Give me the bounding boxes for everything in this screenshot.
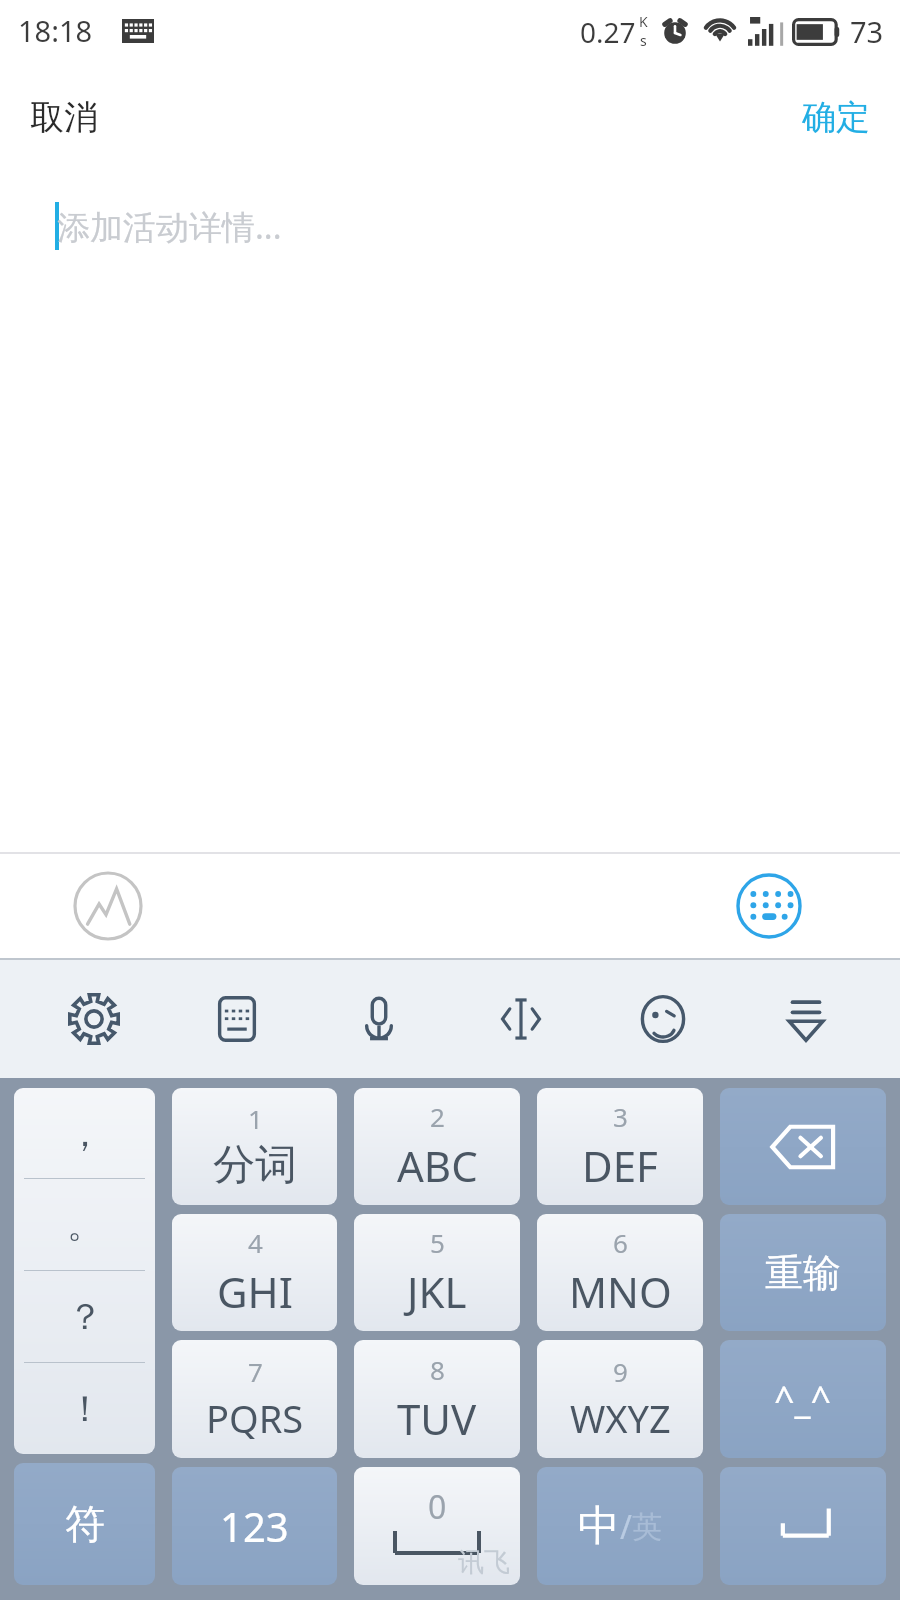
button[interactable]: Keyboard layout bbox=[189, 964, 285, 1074]
staticText: 7 bbox=[248, 1354, 263, 1389]
staticText: 0.27 bbox=[580, 13, 636, 51]
button[interactable]: ^_^ bbox=[720, 1340, 886, 1458]
button[interactable]: 重输 bbox=[720, 1214, 886, 1331]
button[interactable]: 0 bbox=[354, 1467, 520, 1585]
staticText: 3 bbox=[613, 1099, 628, 1134]
button[interactable]: 7 bbox=[172, 1340, 337, 1458]
staticText: 确定 bbox=[802, 96, 870, 139]
staticText: 符 bbox=[65, 1499, 105, 1549]
staticText: 英 bbox=[632, 1508, 662, 1546]
staticText: WXYZ bbox=[570, 1392, 671, 1444]
staticText: 重输 bbox=[765, 1249, 841, 1297]
button[interactable]: 中 bbox=[537, 1467, 703, 1585]
staticText: 。 bbox=[67, 1202, 103, 1247]
button[interactable]: Voice input bbox=[331, 964, 427, 1074]
staticText: 0 bbox=[428, 1485, 447, 1529]
staticText: PQRS bbox=[206, 1392, 304, 1444]
staticText: JKL bbox=[407, 1263, 467, 1320]
staticText: ABC bbox=[397, 1137, 478, 1194]
staticText: 18:18 bbox=[18, 11, 93, 50]
staticText: 取消 bbox=[30, 96, 98, 139]
staticText: 73 bbox=[850, 12, 884, 51]
staticText: ！ bbox=[67, 1386, 103, 1431]
button[interactable]: Enter bbox=[720, 1467, 886, 1585]
button[interactable]: 添加活动详情... bbox=[0, 172, 900, 852]
staticText: ， bbox=[67, 1111, 103, 1156]
button[interactable]: Hide keyboard bbox=[758, 964, 854, 1074]
button[interactable]: 123 bbox=[172, 1467, 337, 1585]
staticText: DEF bbox=[582, 1137, 658, 1194]
button[interactable]: 取消 bbox=[0, 78, 128, 157]
staticText: 123 bbox=[220, 1499, 289, 1553]
staticText: GHI bbox=[217, 1263, 293, 1320]
button[interactable]: 4 bbox=[172, 1214, 337, 1331]
button[interactable]: Emoji bbox=[615, 964, 711, 1074]
staticText: 中 bbox=[578, 1500, 620, 1553]
button[interactable]: 确定 bbox=[772, 78, 900, 157]
button[interactable]: ， bbox=[14, 1088, 155, 1454]
button[interactable]: 2 bbox=[354, 1088, 520, 1205]
button[interactable]: Add image bbox=[72, 870, 144, 942]
staticText: TUV bbox=[397, 1390, 477, 1447]
staticText: MNO bbox=[569, 1263, 672, 1320]
staticText: 5 bbox=[430, 1225, 445, 1260]
button[interactable]: Backspace bbox=[720, 1088, 886, 1205]
button[interactable]: Move cursor bbox=[473, 964, 569, 1074]
staticText: 1 bbox=[248, 1101, 263, 1136]
staticText: ^_^ bbox=[774, 1375, 832, 1424]
button[interactable]: 5 bbox=[354, 1214, 520, 1331]
staticText: 分词 bbox=[213, 1139, 297, 1192]
staticText: 4 bbox=[248, 1225, 263, 1260]
staticText: K bbox=[639, 12, 648, 31]
button[interactable]: 9 bbox=[537, 1340, 703, 1458]
button[interactable]: Settings bbox=[46, 964, 142, 1074]
button[interactable]: 3 bbox=[537, 1088, 703, 1205]
button[interactable]: 8 bbox=[354, 1340, 520, 1458]
button[interactable]: 符 bbox=[14, 1463, 155, 1585]
staticText: 2 bbox=[430, 1099, 445, 1134]
staticText: 8 bbox=[430, 1352, 445, 1387]
button[interactable]: Keyboard bbox=[736, 873, 802, 939]
button[interactable]: 1 bbox=[172, 1088, 337, 1205]
staticText: ？ bbox=[67, 1294, 103, 1339]
staticText: 6 bbox=[613, 1225, 628, 1260]
staticText: / bbox=[620, 1505, 632, 1549]
staticText: 讯飞 bbox=[458, 1546, 510, 1579]
staticText: 9 bbox=[613, 1354, 628, 1389]
staticText: 添加活动详情... bbox=[57, 204, 282, 249]
staticText: s bbox=[640, 31, 647, 50]
button[interactable]: 6 bbox=[537, 1214, 703, 1331]
